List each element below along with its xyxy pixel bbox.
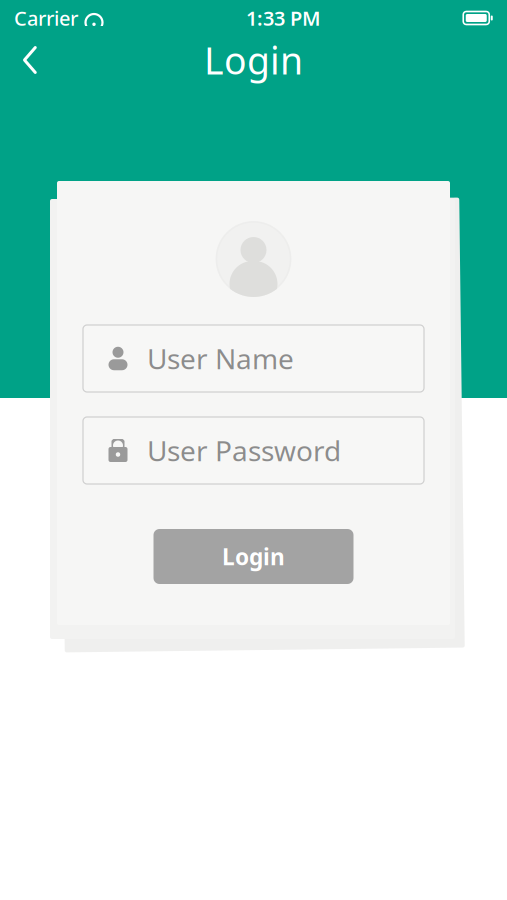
staticText: Login bbox=[204, 35, 303, 85]
staticText: 1:33 PM bbox=[246, 5, 321, 31]
button[interactable]: Back bbox=[8, 38, 52, 82]
button[interactable]: Login bbox=[153, 529, 353, 584]
staticText: Carrier bbox=[14, 5, 78, 31]
button[interactable]: User Name bbox=[83, 325, 424, 392]
button[interactable]: User Password bbox=[83, 417, 424, 484]
staticText: User Password bbox=[147, 432, 341, 469]
staticText: User Name bbox=[147, 340, 294, 377]
staticText: Login bbox=[222, 541, 285, 571]
